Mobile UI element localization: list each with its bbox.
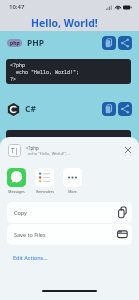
staticText: PHP: [27, 37, 45, 49]
button[interactable]: Copy code: [102, 102, 116, 116]
staticText: Reminders: [36, 189, 54, 194]
button[interactable]: Edit Actions…: [0, 251, 139, 263]
button[interactable]: Share code: [118, 36, 132, 50]
staticText: Messages: [8, 189, 25, 194]
button[interactable]: Messages: [7, 168, 26, 194]
button[interactable]: Save to Files: [7, 224, 132, 245]
button[interactable]: Close: [122, 144, 134, 156]
button[interactable]: Copy: [7, 202, 132, 223]
staticText: T|: [11, 146, 19, 155]
staticText: <?php: [26, 145, 39, 151]
staticText: C#: [25, 103, 36, 115]
staticText: Save to Files: [14, 231, 46, 238]
staticText: php: [10, 40, 20, 47]
button[interactable]: Share code: [118, 102, 132, 116]
staticText: using System;: [10, 138, 50, 145]
staticText: Edit Actions…: [13, 254, 48, 261]
staticText: Hello, World!: [31, 16, 98, 30]
button[interactable]: Reminders: [35, 168, 54, 194]
button[interactable]: Copy code: [102, 36, 116, 50]
staticText: 10:47: [9, 3, 25, 11]
staticText: ?>: [10, 76, 17, 83]
button[interactable]: More: [63, 168, 82, 194]
staticText: class Program {: [10, 145, 56, 152]
staticText: echo "Hello, World!";: [10, 69, 80, 76]
staticText: Copy: [14, 209, 27, 216]
staticText: More: [68, 189, 77, 194]
staticText: echo "Hello, World!";...: [26, 151, 70, 156]
staticText: <?php: [10, 62, 26, 69]
